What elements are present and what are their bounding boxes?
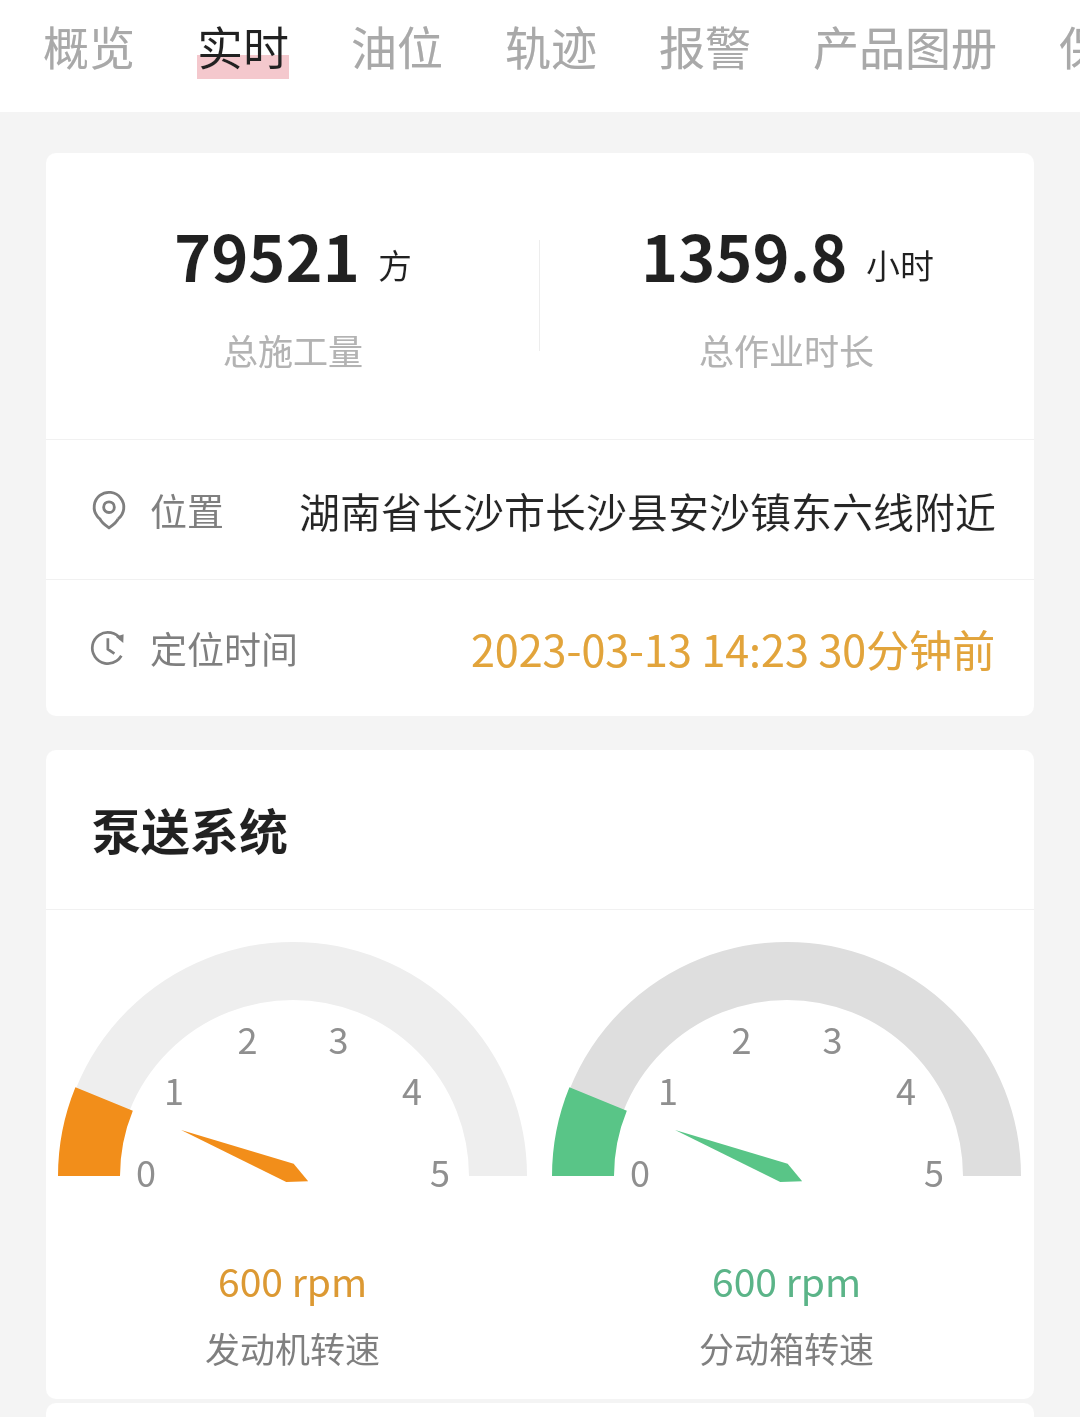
staticText: 600 rpm	[712, 1252, 862, 1308]
staticText: 分动箱转速	[699, 1322, 875, 1373]
staticText: 轨迹	[505, 12, 597, 79]
other: Positioning time	[90, 629, 128, 667]
staticText: 湖南省长沙市长沙县安沙镇东六线附近	[299, 480, 996, 539]
staticText: 总施工量	[223, 324, 364, 375]
staticText: 概览	[43, 12, 135, 79]
staticText: 79521	[174, 209, 360, 300]
button[interactable]: 79521	[46, 153, 540, 375]
staticText: 位置	[150, 483, 224, 537]
button[interactable]: 实时	[166, 0, 320, 112]
button[interactable]: 保	[1028, 0, 1080, 112]
button[interactable]: 600 rpm	[46, 750, 540, 1373]
button[interactable]: 报警	[628, 0, 782, 112]
staticText: 1359.8	[641, 209, 848, 300]
staticText: 小时	[866, 240, 934, 289]
button[interactable]: 产品图册	[782, 0, 1028, 112]
staticText: 实时	[197, 12, 289, 79]
button[interactable]: 油位	[320, 0, 474, 112]
button[interactable]: 概览	[12, 0, 166, 112]
staticText: 600 rpm	[218, 1252, 368, 1308]
staticText: 2023-03-13 14:23 30分钟前	[471, 617, 996, 679]
button[interactable]: 600 rpm	[540, 750, 1034, 1373]
button[interactable]: 1359.8	[540, 153, 1034, 375]
staticText: 报警	[659, 12, 751, 79]
button[interactable]: 轨迹	[474, 0, 628, 112]
staticText: 产品图册	[813, 12, 997, 79]
staticText: 定位时间	[150, 621, 298, 675]
staticText: 油位	[351, 12, 443, 79]
staticText: 方	[378, 240, 412, 289]
staticText: 总作业时长	[699, 324, 875, 375]
button[interactable]: Location	[46, 440, 1034, 579]
button[interactable]: Positioning time	[46, 580, 1034, 716]
staticText: 发动机转速	[205, 1322, 381, 1373]
other: Location	[90, 491, 128, 529]
staticText: 泵送系统	[92, 793, 289, 864]
